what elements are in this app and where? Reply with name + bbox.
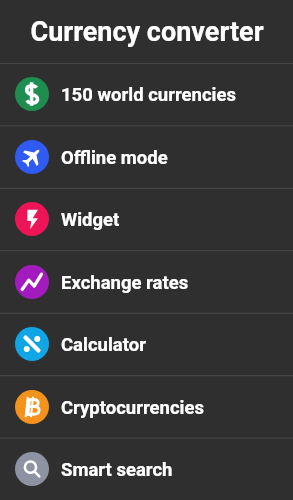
staticText: Currency converter (30, 16, 264, 48)
button[interactable]: Cryptocurrencies (0, 376, 293, 438)
staticText: Smart search (61, 459, 173, 481)
staticText: Exchange rates (61, 272, 189, 294)
button[interactable]: Offline mode (0, 126, 293, 188)
button[interactable]: Currency converter (0, 0, 293, 63)
button[interactable]: Calculator (0, 313, 293, 375)
button[interactable]: Smart search (0, 438, 293, 500)
button[interactable]: 150 world currencies (0, 63, 293, 125)
button[interactable]: Widget (0, 188, 293, 250)
button[interactable]: Exchange rates (0, 251, 293, 313)
staticText: Cryptocurrencies (61, 397, 204, 419)
staticText: 150 world currencies (61, 84, 236, 106)
staticText: Widget (61, 209, 120, 231)
staticText: Offline mode (61, 147, 168, 169)
staticText: Calculator (61, 334, 146, 356)
